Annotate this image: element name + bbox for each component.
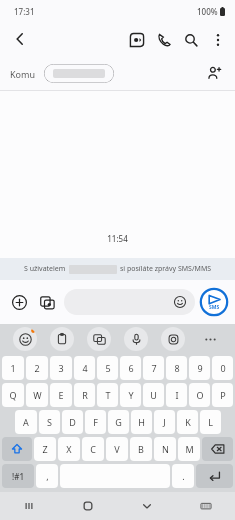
staticText: X — [66, 443, 72, 455]
button[interactable]: H — [131, 410, 152, 434]
button[interactable]: 8 — [166, 356, 187, 380]
button[interactable]: Call — [150, 26, 177, 53]
button[interactable]: W — [26, 383, 48, 407]
staticText: . — [182, 470, 185, 482]
staticText: D — [69, 416, 76, 428]
staticText: 100% — [197, 6, 218, 17]
button[interactable]: 4 — [74, 356, 95, 380]
staticText: V — [114, 443, 120, 455]
button[interactable]: Add attachment — [6, 289, 32, 315]
staticText: K — [185, 416, 191, 428]
staticText: R — [82, 389, 88, 401]
staticText: W — [33, 389, 42, 401]
staticText: T — [105, 389, 111, 401]
staticText: G — [115, 416, 122, 428]
button[interactable]: P — [212, 383, 233, 407]
button[interactable]: Z — [34, 437, 56, 461]
button[interactable]: Add recipient — [201, 60, 227, 86]
button[interactable]: Video call — [123, 26, 150, 53]
staticText: N — [162, 443, 169, 455]
staticText: Komu — [10, 68, 35, 80]
staticText: 3 — [58, 362, 64, 374]
button[interactable]: Translate — [87, 327, 111, 351]
button[interactable]: 6 — [120, 356, 141, 380]
button[interactable]: More — [198, 327, 222, 351]
staticText: 11:54 — [0, 233, 235, 244]
button[interactable]: S — [39, 410, 60, 434]
button[interactable]: 7 — [143, 356, 164, 380]
staticText: 0 — [220, 362, 226, 374]
staticText: 1 — [10, 362, 16, 374]
button[interactable]: 9 — [189, 356, 210, 380]
button[interactable] — [44, 64, 114, 83]
button[interactable]: 3 — [50, 356, 72, 380]
button[interactable]: . — [172, 464, 194, 488]
staticText: B — [138, 443, 144, 455]
staticText: 9 — [197, 362, 203, 374]
button[interactable]: Send SMS — [199, 287, 229, 317]
button[interactable]: Emoji — [64, 289, 195, 315]
button[interactable]: T — [97, 383, 118, 407]
button[interactable]: Hide keyboard — [117, 492, 176, 520]
button[interactable]: Recents — [0, 492, 58, 520]
button[interactable]: A — [15, 410, 37, 434]
staticText: !#1 — [12, 471, 24, 482]
button[interactable]: 1 — [2, 356, 24, 380]
button[interactable]: F — [85, 410, 106, 434]
button[interactable]: I — [166, 383, 187, 407]
button[interactable]: 2 — [26, 356, 48, 380]
button[interactable]: Emoji — [13, 327, 37, 351]
button[interactable]: J — [154, 410, 175, 434]
staticText: E — [58, 389, 64, 401]
button[interactable]: R — [74, 383, 95, 407]
staticText: A — [23, 416, 29, 428]
button[interactable]: G — [108, 410, 129, 434]
button[interactable]: L — [200, 410, 221, 434]
button[interactable]: Q — [2, 383, 24, 407]
button[interactable]: Clipboard — [50, 327, 74, 351]
staticText: 8 — [174, 362, 180, 374]
staticText: I — [175, 389, 179, 401]
staticText: 6 — [128, 362, 134, 374]
button[interactable]: , — [36, 464, 58, 488]
button[interactable]: V — [106, 437, 128, 461]
staticText: 4 — [82, 362, 88, 374]
staticText: U — [150, 389, 157, 401]
button[interactable]: 0 — [212, 356, 233, 380]
staticText: 5 — [105, 362, 111, 374]
staticText: L — [208, 416, 213, 428]
button[interactable]: B — [130, 437, 152, 461]
button[interactable]: X — [58, 437, 80, 461]
button[interactable]: Switch keyboard — [176, 492, 235, 520]
button[interactable]: !#1 — [2, 464, 34, 488]
staticText: P — [220, 389, 226, 401]
button[interactable]: Emoji — [170, 292, 190, 312]
button[interactable]: O — [189, 383, 210, 407]
button[interactable]: Voice input — [124, 327, 148, 351]
button[interactable]: Y — [120, 383, 141, 407]
staticText: , — [46, 470, 49, 482]
staticText: Y — [128, 389, 134, 401]
staticText: J — [163, 416, 166, 428]
button[interactable]: Home — [58, 492, 117, 520]
button[interactable]: Search — [177, 26, 204, 53]
staticText: Z — [42, 443, 48, 455]
button[interactable]: N — [154, 437, 176, 461]
button[interactable]: M — [178, 437, 200, 461]
button[interactable]: Enter — [196, 464, 233, 488]
button[interactable]: Backspace — [202, 437, 233, 461]
button[interactable]: 5 — [97, 356, 118, 380]
button[interactable]: More options — [204, 26, 231, 53]
button[interactable]: Shift — [2, 437, 32, 461]
button[interactable]: U — [143, 383, 164, 407]
button[interactable]: D — [62, 410, 83, 434]
button[interactable]: Back — [6, 25, 34, 53]
button[interactable]: Gallery — [34, 289, 60, 315]
button[interactable]: E — [50, 383, 72, 407]
button[interactable]: C — [82, 437, 104, 461]
button[interactable]: K — [177, 410, 198, 434]
staticText: S uživatelem — [24, 264, 66, 274]
button[interactable]: Keyboard settings — [161, 327, 185, 351]
staticText: S — [47, 416, 52, 428]
